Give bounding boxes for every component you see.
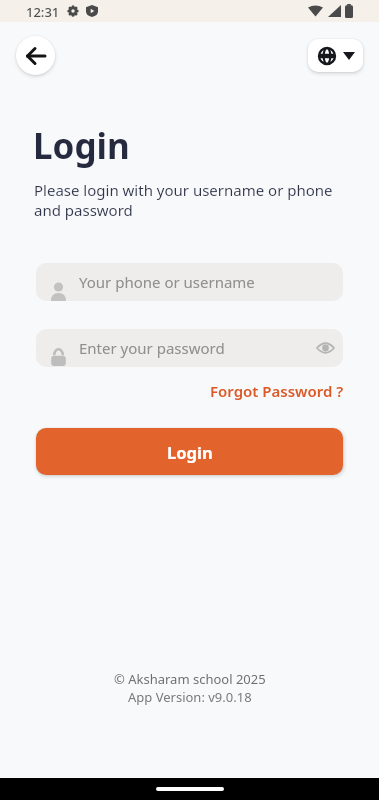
staticText: Login bbox=[167, 441, 213, 463]
staticText: 12:31 bbox=[26, 3, 60, 21]
button[interactable]: Your phone or username bbox=[36, 263, 343, 301]
button[interactable] bbox=[308, 39, 363, 72]
staticText: Login bbox=[33, 122, 130, 170]
staticText: © Aksharam school 2025 bbox=[114, 670, 266, 688]
staticText: Enter your password bbox=[79, 338, 225, 358]
button[interactable]: Login bbox=[36, 428, 343, 475]
button[interactable]: Forgot Password ? bbox=[210, 381, 344, 401]
button[interactable]: Enter your password bbox=[36, 329, 343, 367]
button[interactable] bbox=[16, 36, 55, 75]
staticText: Please login with your username or phone… bbox=[34, 180, 333, 220]
staticText: App Version: v9.0.18 bbox=[128, 688, 252, 706]
staticText: Your phone or username bbox=[79, 272, 255, 292]
